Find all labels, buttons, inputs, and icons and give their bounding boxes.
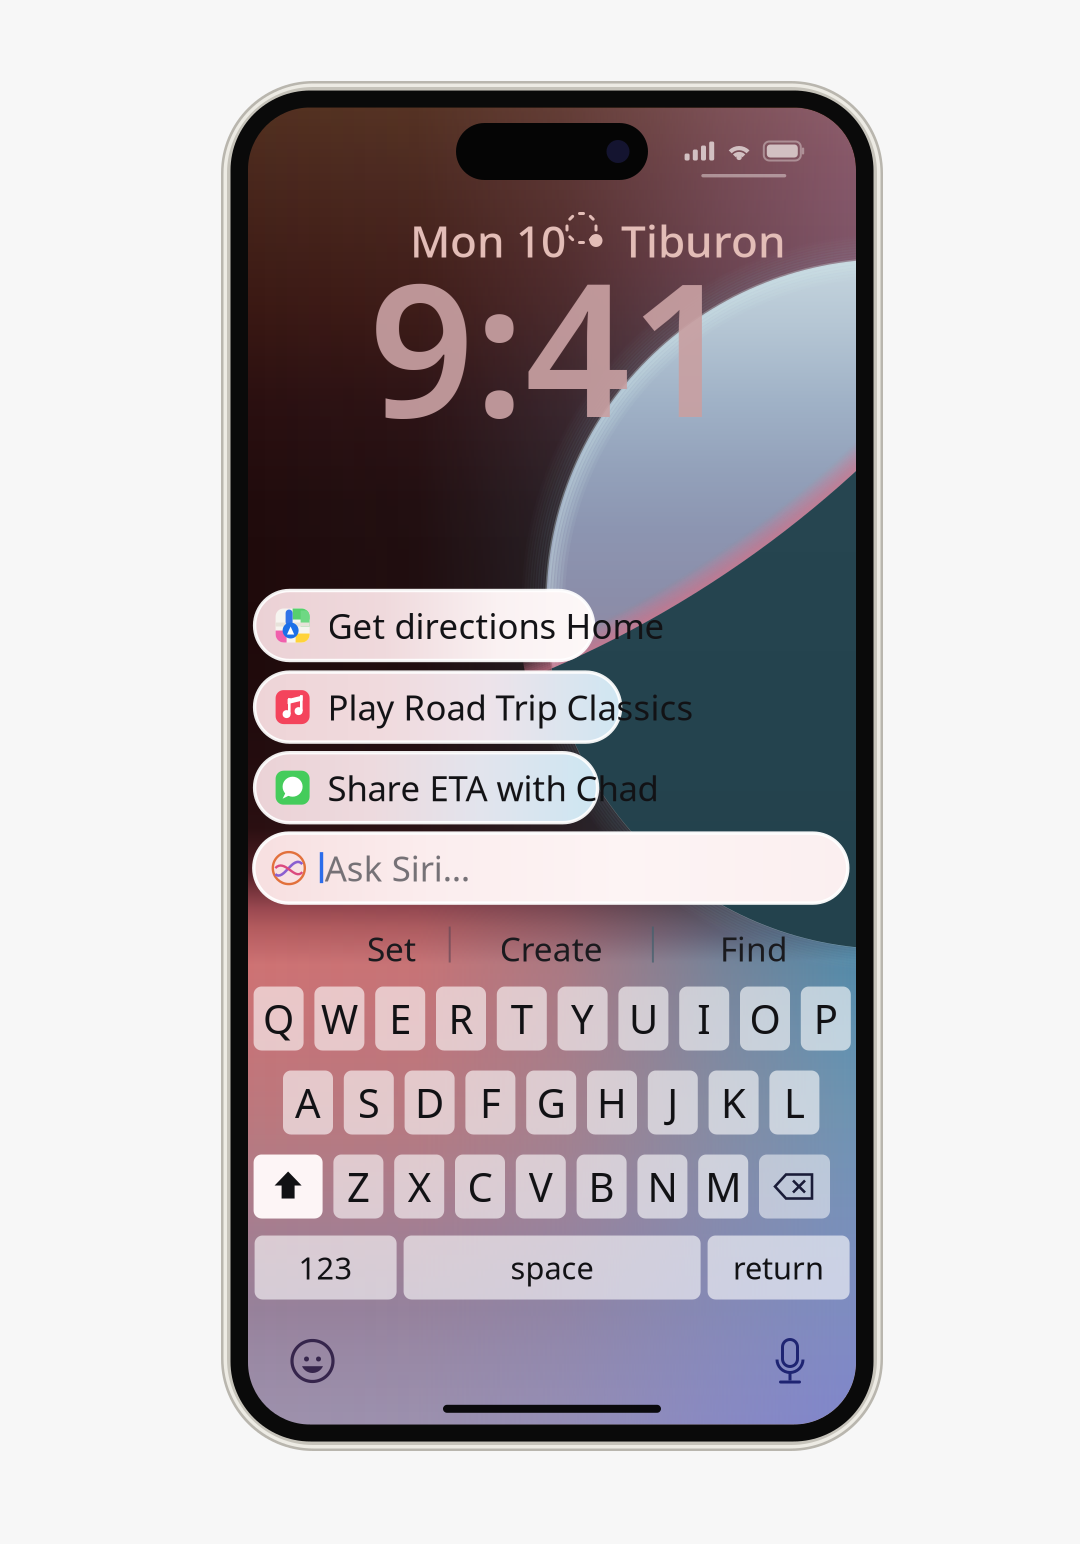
staticText: L (784, 1076, 805, 1129)
button[interactable]: Set (331, 926, 451, 970)
staticText: Y (571, 992, 594, 1045)
button[interactable]: T (497, 986, 547, 1050)
button[interactable]: N (637, 1154, 687, 1218)
button[interactable]: Emoji keyboard (292, 1340, 334, 1382)
staticText: Share ETA with Chad (328, 765, 659, 811)
staticText: W (321, 992, 358, 1045)
staticText: X (408, 1160, 431, 1213)
button[interactable]: W (314, 986, 364, 1050)
button[interactable]: Dictation (773, 1339, 807, 1383)
staticText: C (467, 1160, 492, 1213)
staticText: D (415, 1076, 444, 1129)
button[interactable]: Ask Siri… (254, 833, 848, 903)
button[interactable]: Play Road Trip Classics (255, 672, 621, 742)
button[interactable]: H (587, 1070, 637, 1134)
staticText: M (705, 1160, 741, 1213)
staticText: A (295, 1076, 321, 1129)
button[interactable]: I (679, 986, 729, 1050)
button[interactable]: R (436, 986, 486, 1050)
button[interactable]: V (516, 1154, 566, 1218)
staticText: R (448, 992, 473, 1045)
staticText: Mon 10 (410, 211, 566, 270)
staticText: H (597, 1076, 627, 1129)
staticText: S (358, 1076, 380, 1129)
button[interactable]: Z (333, 1154, 383, 1218)
staticText: Play Road Trip Classics (328, 684, 694, 730)
button[interactable]: B (577, 1154, 627, 1218)
staticText: 123 (299, 1247, 353, 1288)
button[interactable]: space (404, 1235, 701, 1299)
staticText: U (629, 992, 658, 1045)
button[interactable]: Q (254, 986, 304, 1050)
button[interactable]: M (698, 1154, 748, 1218)
staticText: Get directions Home (328, 602, 665, 648)
staticText: V (529, 1160, 553, 1213)
button[interactable]: F (465, 1070, 515, 1134)
staticText: space (511, 1247, 594, 1288)
button[interactable]: Create (491, 926, 611, 970)
staticText: Tiburon (621, 211, 786, 270)
button[interactable]: X (394, 1154, 444, 1218)
button[interactable]: L (769, 1070, 819, 1134)
staticText: G (537, 1076, 566, 1129)
staticText: T (511, 992, 533, 1045)
button[interactable]: return (708, 1235, 850, 1299)
staticText: Z (347, 1160, 370, 1213)
button[interactable]: U (618, 986, 668, 1050)
button[interactable]: S (344, 1070, 394, 1134)
button[interactable]: Y (558, 986, 608, 1050)
staticText: B (589, 1160, 615, 1213)
staticText: 9:41 (369, 223, 735, 468)
button[interactable]: P (801, 986, 851, 1050)
button[interactable]: Delete (759, 1154, 830, 1218)
button[interactable]: J (648, 1070, 698, 1134)
staticText: Ask Siri… (325, 845, 470, 891)
button[interactable]: Shift (254, 1154, 323, 1218)
staticText: return (733, 1247, 824, 1288)
staticText: Q (263, 992, 294, 1045)
button[interactable]: 123 (255, 1235, 397, 1299)
button[interactable]: E (375, 986, 425, 1050)
button[interactable]: A (283, 1070, 333, 1134)
staticText: E (389, 992, 411, 1045)
staticText: I (697, 992, 711, 1045)
staticText: O (749, 992, 780, 1045)
button[interactable]: Share ETA with Chad (255, 753, 598, 823)
staticText: F (480, 1076, 501, 1129)
button[interactable]: G (526, 1070, 576, 1134)
staticText: P (814, 992, 838, 1045)
button[interactable]: Get directions Home (255, 590, 594, 660)
staticText: J (667, 1076, 678, 1129)
staticText: Set (367, 926, 416, 971)
staticText: Create (500, 926, 603, 971)
button[interactable]: C (455, 1154, 505, 1218)
button[interactable]: Find (694, 926, 814, 970)
button[interactable]: O (740, 986, 790, 1050)
button[interactable]: D (405, 1070, 455, 1134)
staticText: N (647, 1160, 677, 1213)
button[interactable]: K (709, 1070, 759, 1134)
staticText: Find (720, 926, 788, 971)
staticText: K (721, 1076, 746, 1129)
